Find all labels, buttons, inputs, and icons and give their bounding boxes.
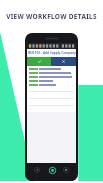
- button[interactable]: [29, 80, 74, 82]
- button[interactable]: Home: [48, 166, 56, 174]
- button[interactable]: Approve: [27, 57, 51, 66]
- button[interactable]: [29, 72, 74, 74]
- button[interactable]: [29, 68, 74, 70]
- button[interactable]: [29, 76, 74, 78]
- button[interactable]: [29, 84, 74, 86]
- staticText: VIEW WORKFLOW DETAILS: [6, 12, 97, 21]
- button[interactable]: Reject: [51, 57, 76, 66]
- staticText: BIN 100 - Add Supply Company: [28, 51, 76, 55]
- button[interactable]: Recent apps: [62, 166, 70, 174]
- button[interactable]: Back: [33, 166, 41, 174]
